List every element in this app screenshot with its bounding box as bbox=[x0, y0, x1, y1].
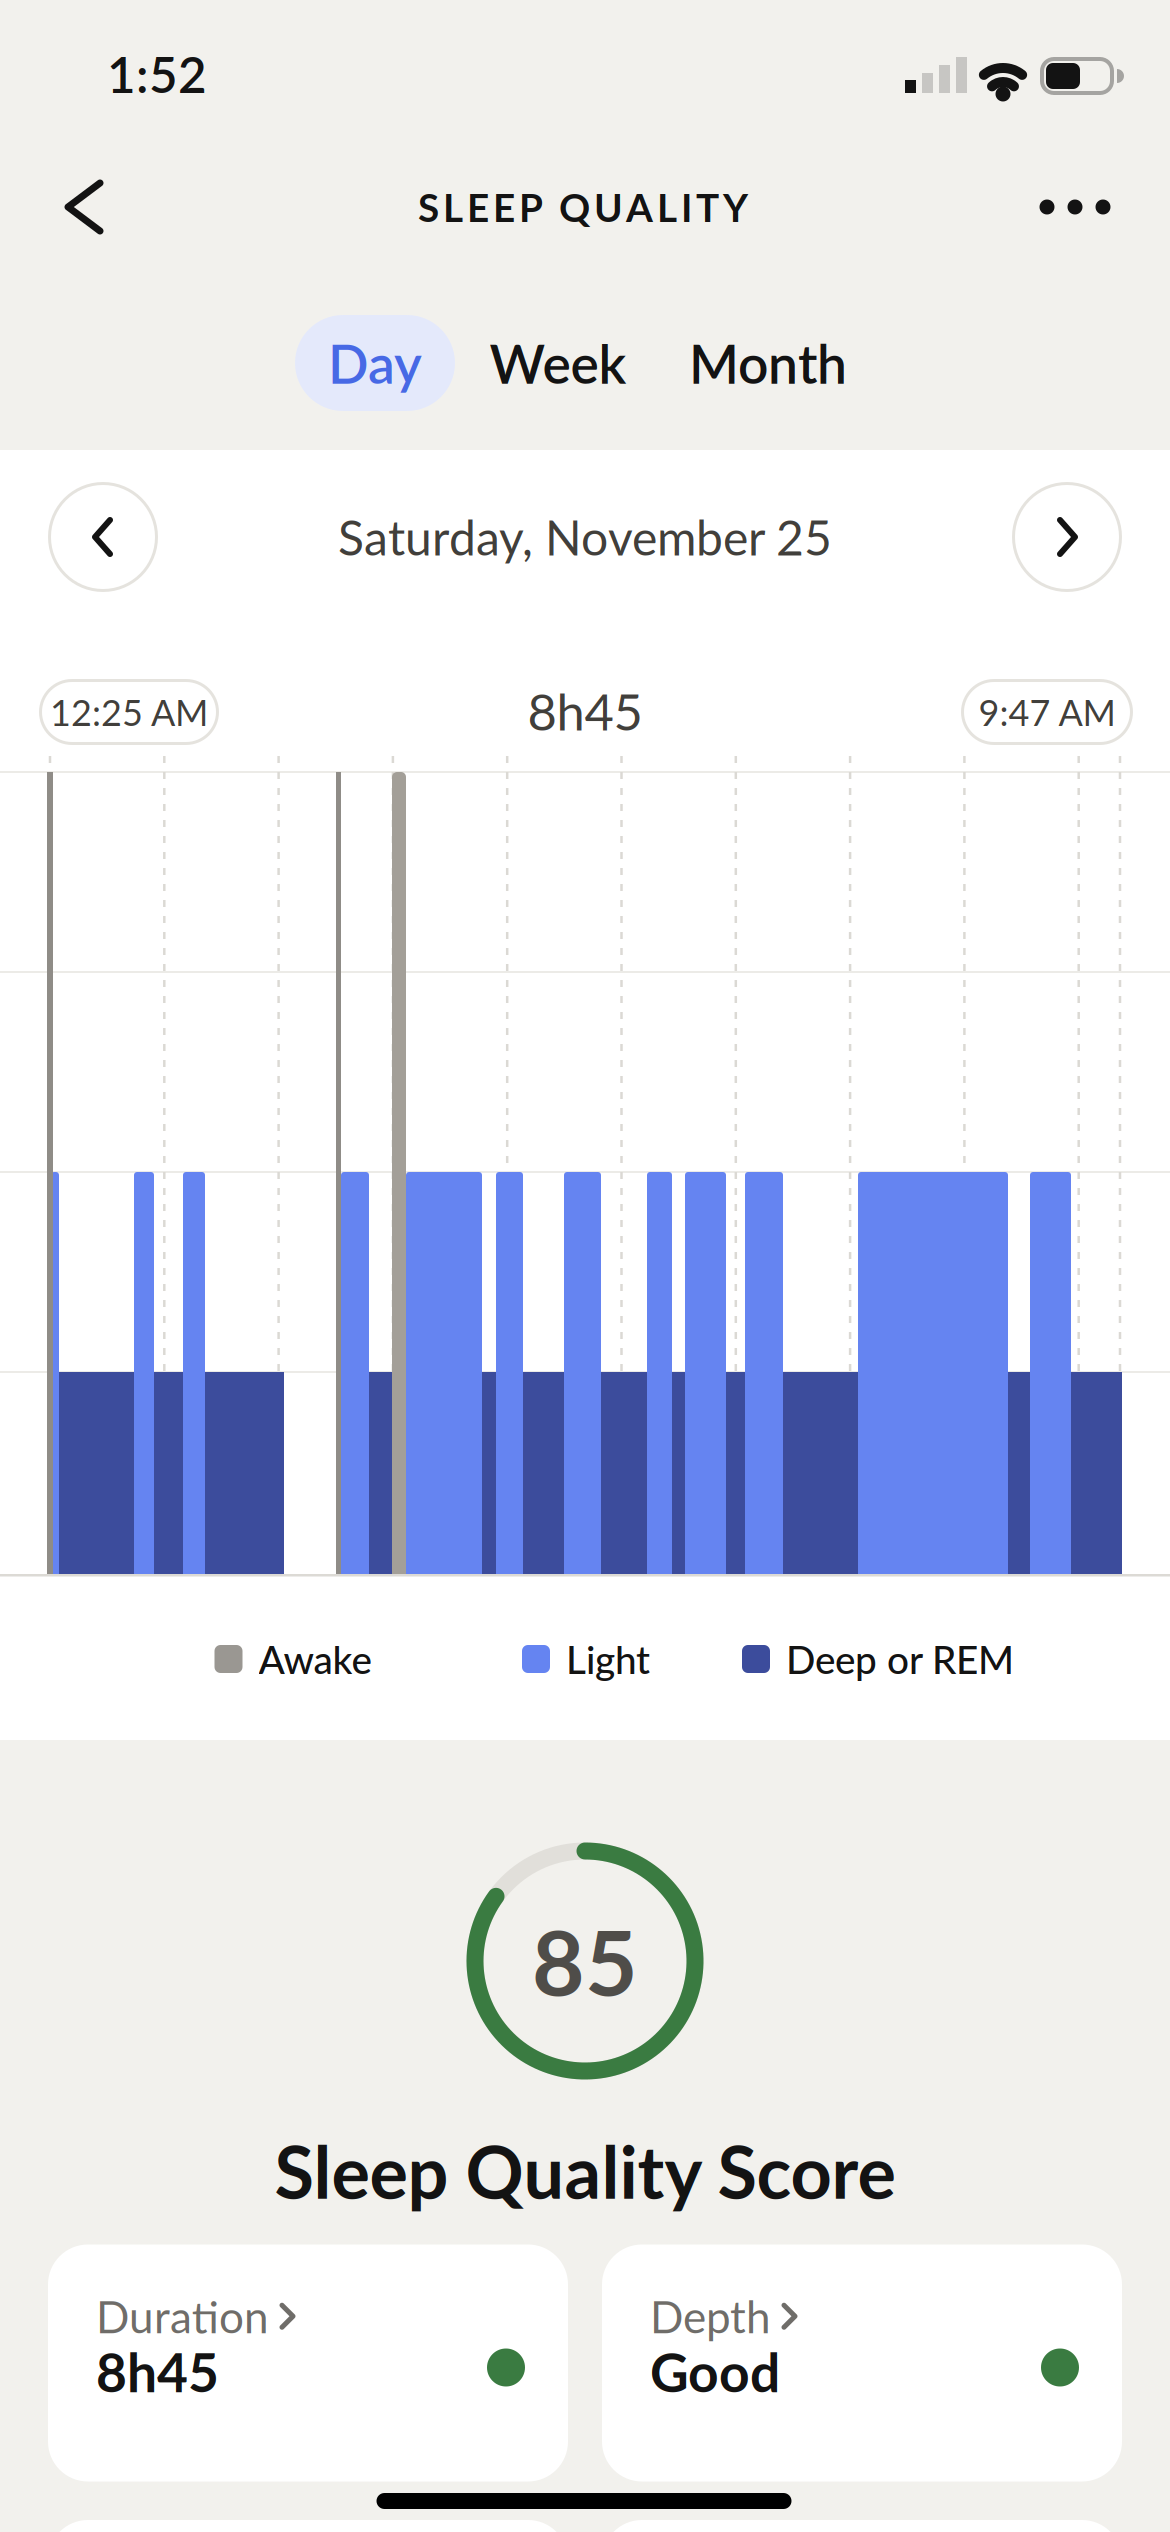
staticText: 1:52 bbox=[107, 45, 207, 103]
staticText: Saturday, November 25 bbox=[338, 509, 832, 565]
staticText: Duration bbox=[96, 2290, 269, 2342]
staticText: 8h45 bbox=[96, 2340, 219, 2403]
button[interactable] bbox=[1012, 482, 1122, 592]
staticText: Sleep Quality Score bbox=[274, 2129, 895, 2213]
button[interactable]: Week bbox=[458, 315, 658, 411]
staticText: 12:25 AM bbox=[50, 691, 208, 733]
staticText: Deep or REM bbox=[786, 1636, 1014, 1682]
staticText: 85 bbox=[532, 1908, 638, 2014]
staticText: Good bbox=[650, 2340, 780, 2403]
button[interactable] bbox=[48, 482, 158, 592]
staticText: 8h45 bbox=[527, 681, 642, 741]
button[interactable]: Depth bbox=[602, 2244, 1122, 2481]
button[interactable]: Month bbox=[658, 315, 878, 411]
button[interactable] bbox=[1030, 189, 1120, 225]
staticText: Day bbox=[328, 332, 422, 394]
button[interactable]: Duration bbox=[48, 2244, 568, 2481]
staticText: Light bbox=[566, 1636, 650, 1682]
staticText: Week bbox=[489, 332, 626, 394]
staticText: Awake bbox=[258, 1636, 371, 1682]
button[interactable] bbox=[44, 167, 124, 247]
button[interactable]: Day bbox=[295, 315, 455, 411]
staticText: SLEEP QUALITY bbox=[418, 184, 748, 230]
staticText: 9:47 AM bbox=[978, 691, 1115, 733]
staticText: Depth bbox=[650, 2290, 771, 2342]
staticText: Month bbox=[689, 332, 847, 394]
